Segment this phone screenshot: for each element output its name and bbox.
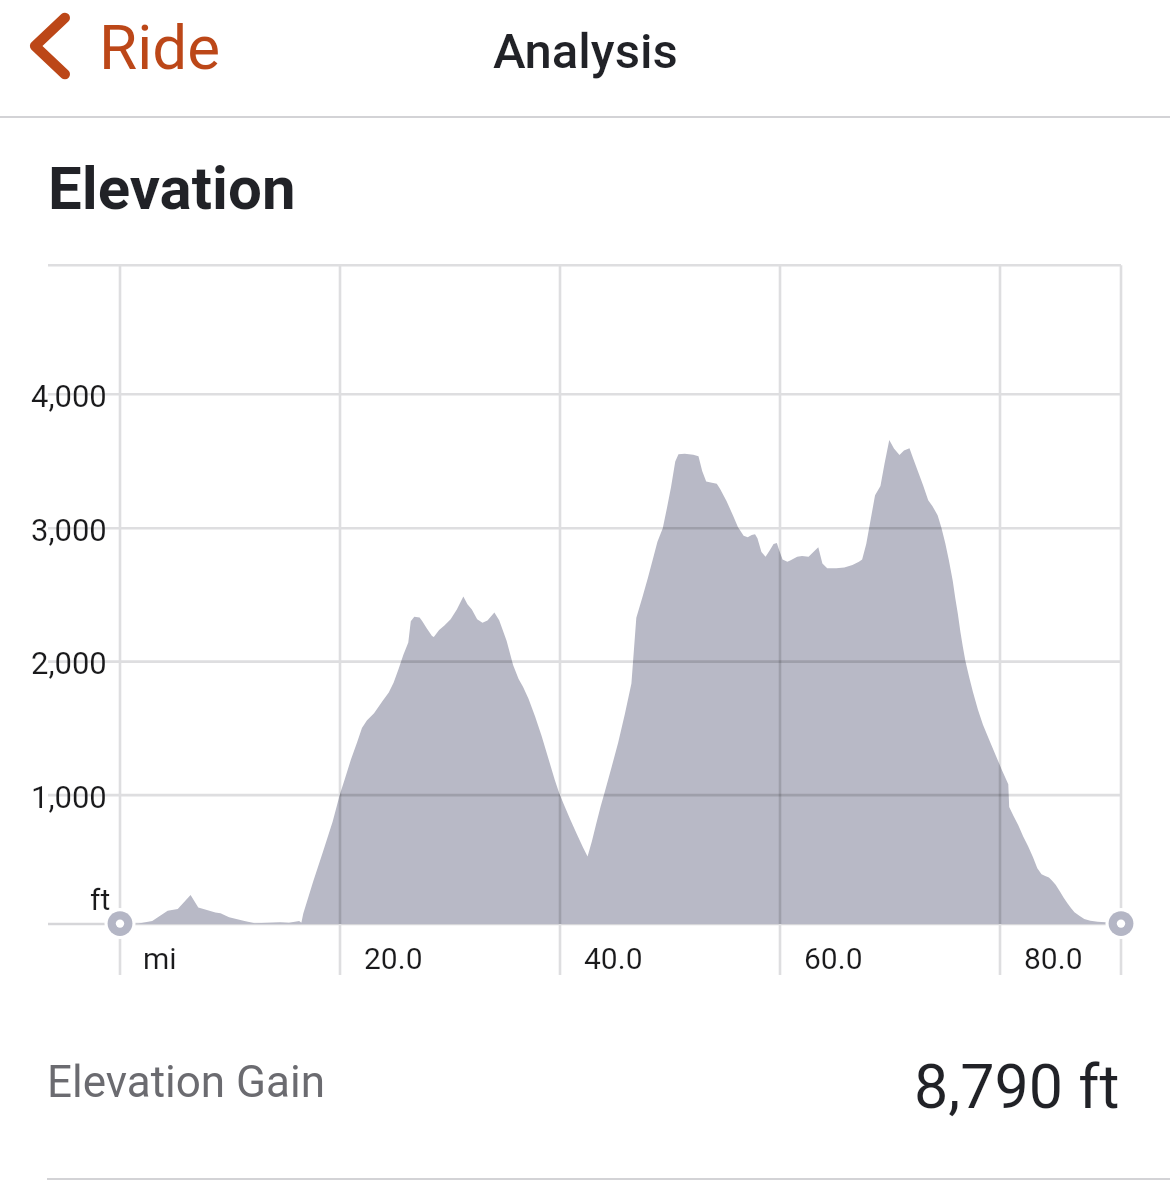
staticText: 80.0 [1024, 941, 1083, 976]
staticText: Ride [99, 11, 221, 84]
staticText: Elevation Gain [47, 1056, 325, 1108]
staticText: 40.0 [584, 941, 643, 976]
staticText: mi [143, 941, 177, 976]
button[interactable]: Elevation Gain [0, 1020, 1170, 1178]
staticText: 20.0 [364, 941, 423, 976]
button[interactable]: Back to Ride [14, 4, 230, 112]
staticText: 4,000 [31, 378, 107, 414]
staticText: 1,000 [31, 779, 107, 815]
staticText: ft [90, 882, 111, 917]
staticText: Elevation [48, 153, 296, 223]
staticText: Analysis [493, 23, 678, 80]
staticText: 8,790 ft [914, 1051, 1120, 1122]
staticText: 2,000 [31, 645, 107, 681]
staticText: 60.0 [804, 941, 863, 976]
staticText: 3,000 [31, 512, 107, 548]
